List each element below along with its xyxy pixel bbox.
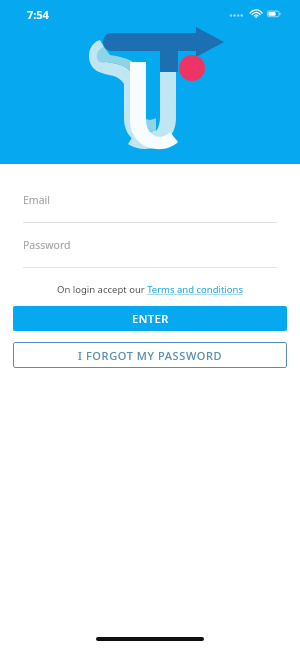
staticText: Password xyxy=(23,238,71,252)
button[interactable]: On login accept our Terms and conditions xyxy=(0,281,300,298)
staticText: Email xyxy=(23,193,50,207)
button[interactable]: Password xyxy=(0,223,300,268)
staticText: ENTER xyxy=(132,311,169,326)
staticText: 7:54 xyxy=(27,7,49,22)
button[interactable]: I FORGOT MY PASSWORD xyxy=(13,342,287,368)
button[interactable]: ENTER xyxy=(13,306,287,331)
staticText: On login accept our Terms and conditions xyxy=(57,283,243,296)
staticText: I FORGOT MY PASSWORD xyxy=(78,348,223,363)
button[interactable]: Email xyxy=(0,178,300,223)
